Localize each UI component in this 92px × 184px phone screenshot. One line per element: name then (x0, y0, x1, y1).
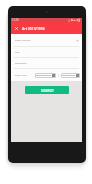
staticText: Select Time (15, 74, 27, 77)
staticText: Select the item (15, 39, 31, 42)
staticText: Art 3013/1956 (22, 26, 45, 31)
staticText: SUBMIT (41, 88, 54, 93)
button[interactable]: Select the item (11, 34, 82, 46)
staticText: △ ● ▬ ▮ ▌ (68, 18, 81, 22)
button[interactable]: Close (11, 23, 22, 34)
button[interactable]: SUBMIT (25, 86, 69, 94)
button[interactable]: Title (11, 47, 82, 57)
button[interactable]: Pick value (61, 73, 80, 78)
staticText: Description (15, 62, 27, 65)
staticText: 12:30 (12, 18, 19, 22)
staticText: Title (15, 51, 20, 54)
button[interactable]: Description (11, 58, 82, 68)
button[interactable]: Pick value (35, 73, 56, 78)
